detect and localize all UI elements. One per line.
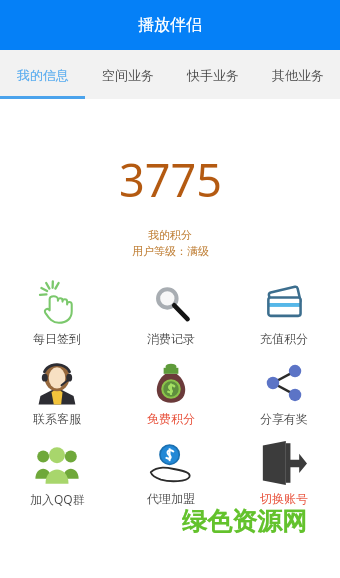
staticText: 播放伴侣 <box>138 15 202 35</box>
button[interactable]: 消费记录 <box>114 280 227 346</box>
staticText: 其他业务 <box>272 67 324 83</box>
staticText: 每日签到 <box>33 331 81 346</box>
button[interactable]: 空间业务 <box>85 50 170 99</box>
other: 每日签到 <box>34 280 80 326</box>
button[interactable]: 充值积分 <box>227 280 340 346</box>
staticText: 3775 <box>119 149 222 210</box>
other: 代理加盟 <box>148 440 194 486</box>
staticText: 充值积分 <box>260 331 308 346</box>
staticText: 用户等级：满级 <box>132 244 209 258</box>
staticText: 代理加盟 <box>147 491 195 506</box>
other: 分享有奖 <box>261 360 307 406</box>
staticText: 免费积分 <box>147 411 195 426</box>
button[interactable]: 其他业务 <box>255 50 340 99</box>
button[interactable]: 播放伴侣 <box>0 0 340 50</box>
staticText: 加入QQ群 <box>30 491 85 507</box>
other: 加入QQ群 <box>34 440 80 486</box>
button[interactable]: 分享有奖 <box>227 360 340 426</box>
staticText: 我的信息 <box>17 67 69 83</box>
button[interactable]: 快手业务 <box>170 50 255 99</box>
button[interactable]: 加入QQ群 <box>0 440 114 507</box>
staticText: 消费记录 <box>147 331 195 346</box>
staticText: 联系客服 <box>33 411 81 426</box>
button[interactable]: 每日签到 <box>0 280 114 346</box>
button[interactable]: 切换账号 <box>227 440 340 506</box>
other: 消费记录 <box>148 280 194 326</box>
other: 联系客服 <box>34 360 80 406</box>
staticText: 空间业务 <box>102 67 154 83</box>
button[interactable]: 联系客服 <box>0 360 114 426</box>
staticText: 快手业务 <box>187 67 239 83</box>
other: 切换账号 <box>261 440 307 486</box>
other: 免费积分 <box>148 360 194 406</box>
staticText: 绿色资源网 <box>182 506 307 537</box>
other: 充值积分 <box>261 280 307 326</box>
staticText: 分享有奖 <box>260 411 308 426</box>
button[interactable]: 我的信息 <box>0 50 85 99</box>
staticText: 我的积分 <box>148 228 192 242</box>
staticText: 切换账号 <box>260 491 308 506</box>
button[interactable]: 免费积分 <box>114 360 227 426</box>
button[interactable]: 代理加盟 <box>114 440 227 506</box>
